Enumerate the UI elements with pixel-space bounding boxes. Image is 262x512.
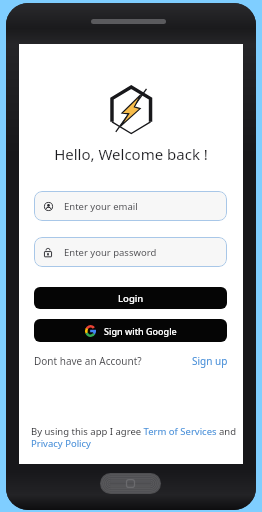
staticText: By using this app I agree Term of Servic… — [31, 425, 240, 450]
staticText: Enter your password — [64, 246, 157, 259]
staticText: Enter your email — [64, 200, 138, 213]
staticText: Login — [118, 292, 144, 305]
button[interactable]: Home — [100, 473, 161, 494]
button[interactable]: Enter your password — [34, 237, 227, 267]
button[interactable]: Sign with Google — [34, 319, 227, 342]
staticText: Sign with Google — [104, 325, 177, 337]
staticText: Hello, Welcome back ! — [19, 144, 243, 164]
button[interactable]: Login — [34, 287, 227, 309]
staticText: Sign up — [192, 354, 228, 368]
staticText: Dont have an Account? — [34, 354, 142, 368]
button[interactable]: Enter your email — [34, 191, 227, 221]
button[interactable]: Sign up — [192, 354, 228, 368]
